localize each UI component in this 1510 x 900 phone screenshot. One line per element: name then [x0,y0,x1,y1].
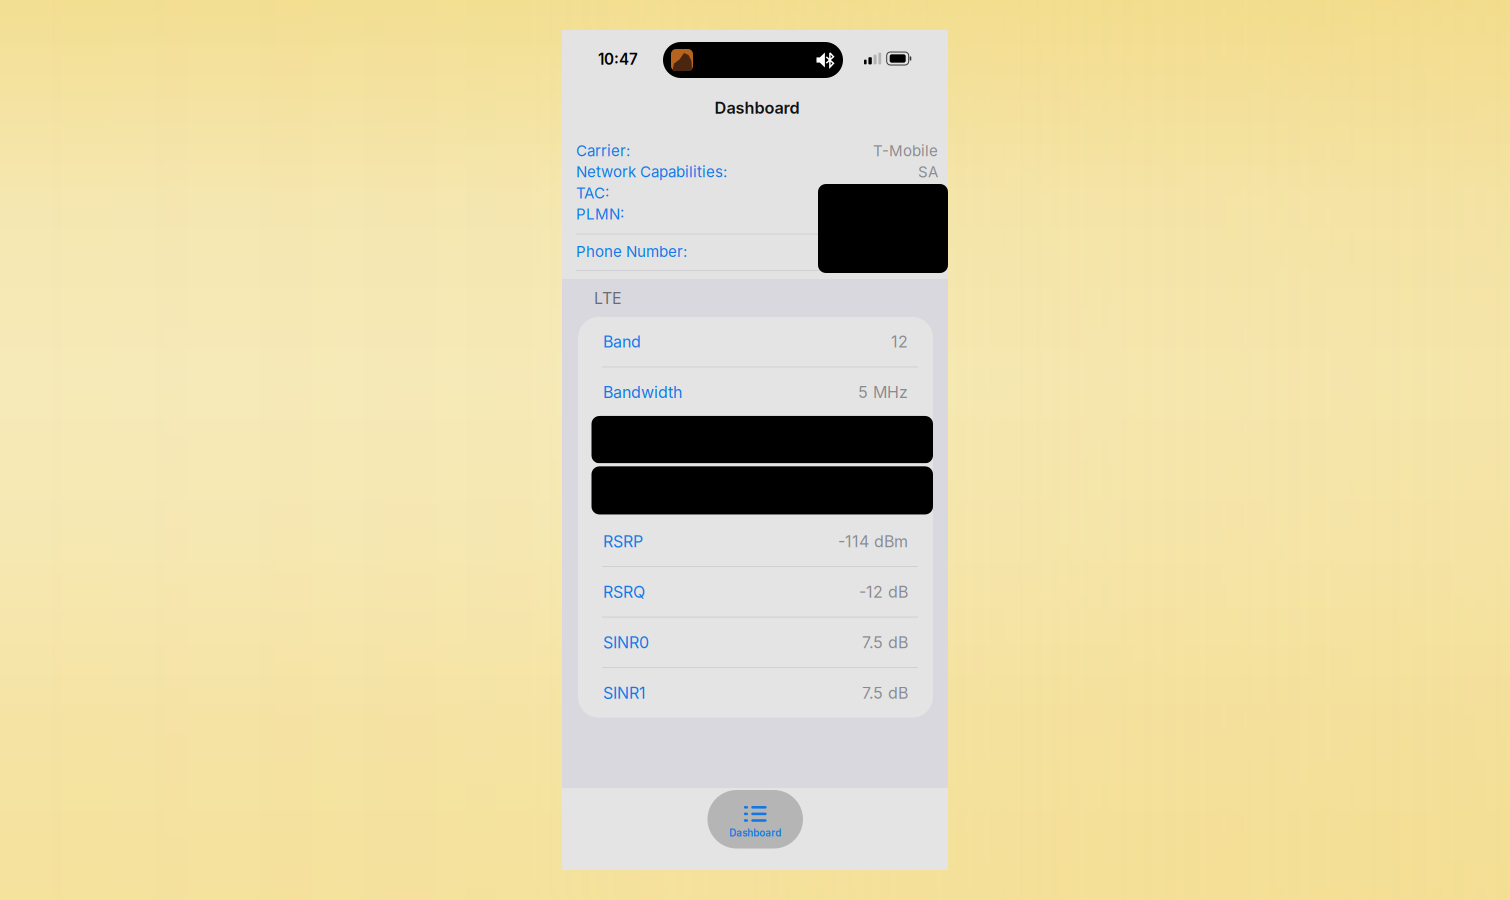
staticText: T-Mobile [873,142,938,160]
staticText: Dashboard [714,98,799,118]
staticText: Phone Number: [576,242,687,260]
staticText: LTE [594,288,622,308]
staticText: Band [603,332,641,351]
staticText: -114 dBm [838,532,908,551]
staticText: SA [918,163,938,181]
staticText: 12 [891,332,908,351]
staticText: Dashboard [729,827,781,839]
staticText: Network Capabilities: [576,163,727,181]
staticText: Carrier: [576,142,630,160]
staticText: 5 MHz [858,382,908,402]
staticText: -12 dB [859,582,908,601]
staticText: Bandwidth [603,382,682,402]
staticText: PLMN: [576,205,624,223]
button[interactable]: Dashboard [707,790,803,848]
staticText: RSRQ [603,582,645,601]
staticText: 7.5 dB [862,633,908,652]
staticText: 7.5 dB [862,683,908,702]
staticText: SINR0 [603,633,649,652]
staticText: RSRP [603,532,643,551]
staticText: 10:47 [598,50,638,68]
staticText: TAC: [576,184,609,202]
staticText: SINR1 [603,683,646,702]
